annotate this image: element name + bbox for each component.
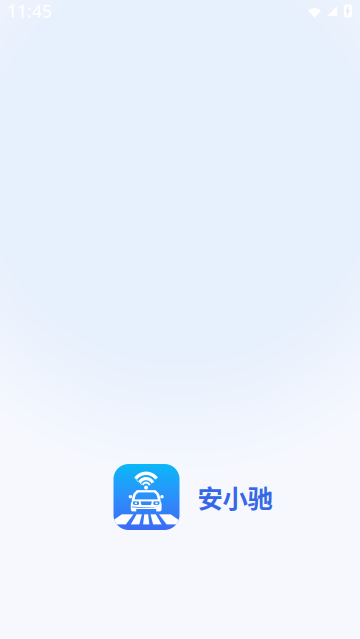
- staticText: 11:45: [7, 0, 52, 22]
- staticText: 安小驰: [197, 479, 272, 515]
